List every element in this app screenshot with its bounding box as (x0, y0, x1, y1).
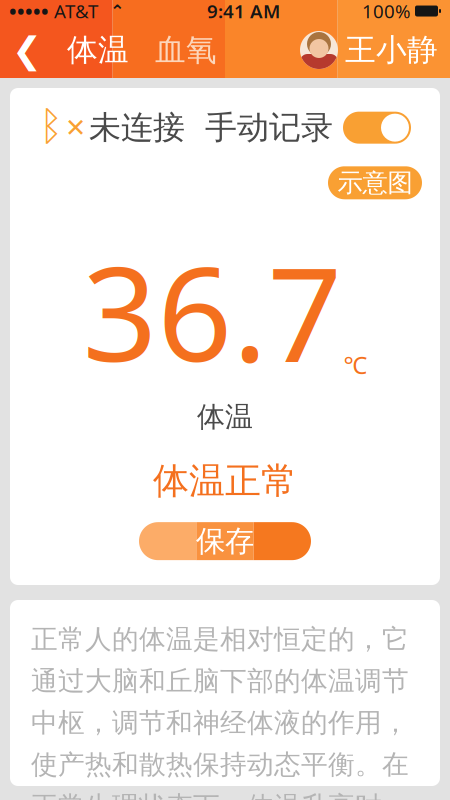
staticText: ⌃ (98, 1, 125, 21)
staticText: 9:41 AM (207, 0, 280, 23)
button[interactable]: 手动记录 (343, 112, 411, 144)
staticText: 手动记录 (205, 108, 333, 147)
staticText: AT&T (49, 0, 98, 23)
staticText: 36.7 (82, 224, 342, 398)
staticText: ❮ (12, 30, 42, 70)
staticText: ᛒ (39, 108, 63, 147)
button[interactable]: 王小静 (300, 22, 450, 78)
staticText: 体温 (197, 400, 253, 434)
button[interactable]: 示意图 (328, 166, 422, 199)
staticText: ℃ (343, 349, 367, 381)
staticText: 体温正常 (153, 459, 297, 503)
staticText: 王小静 (345, 31, 438, 69)
staticText: 保存 (196, 523, 254, 559)
staticText: 体温 (67, 31, 129, 69)
staticText: 未连接 (89, 108, 185, 147)
staticText: ✕ (65, 113, 86, 142)
button[interactable]: Back (0, 22, 54, 78)
staticText: 血氧 (155, 31, 217, 69)
button[interactable]: 血氧 (142, 22, 230, 78)
button[interactable]: 体温 (54, 22, 142, 78)
button[interactable]: 保存 (139, 522, 311, 560)
staticText: 示意图 (337, 167, 412, 198)
staticText: ••••• (9, 0, 49, 24)
staticText: 正常人的体温是相对恒定的，它通过大脑和丘脑下部的体温调节中枢，调节和神经体液的作… (31, 623, 409, 800)
staticText: 100% (362, 0, 411, 23)
